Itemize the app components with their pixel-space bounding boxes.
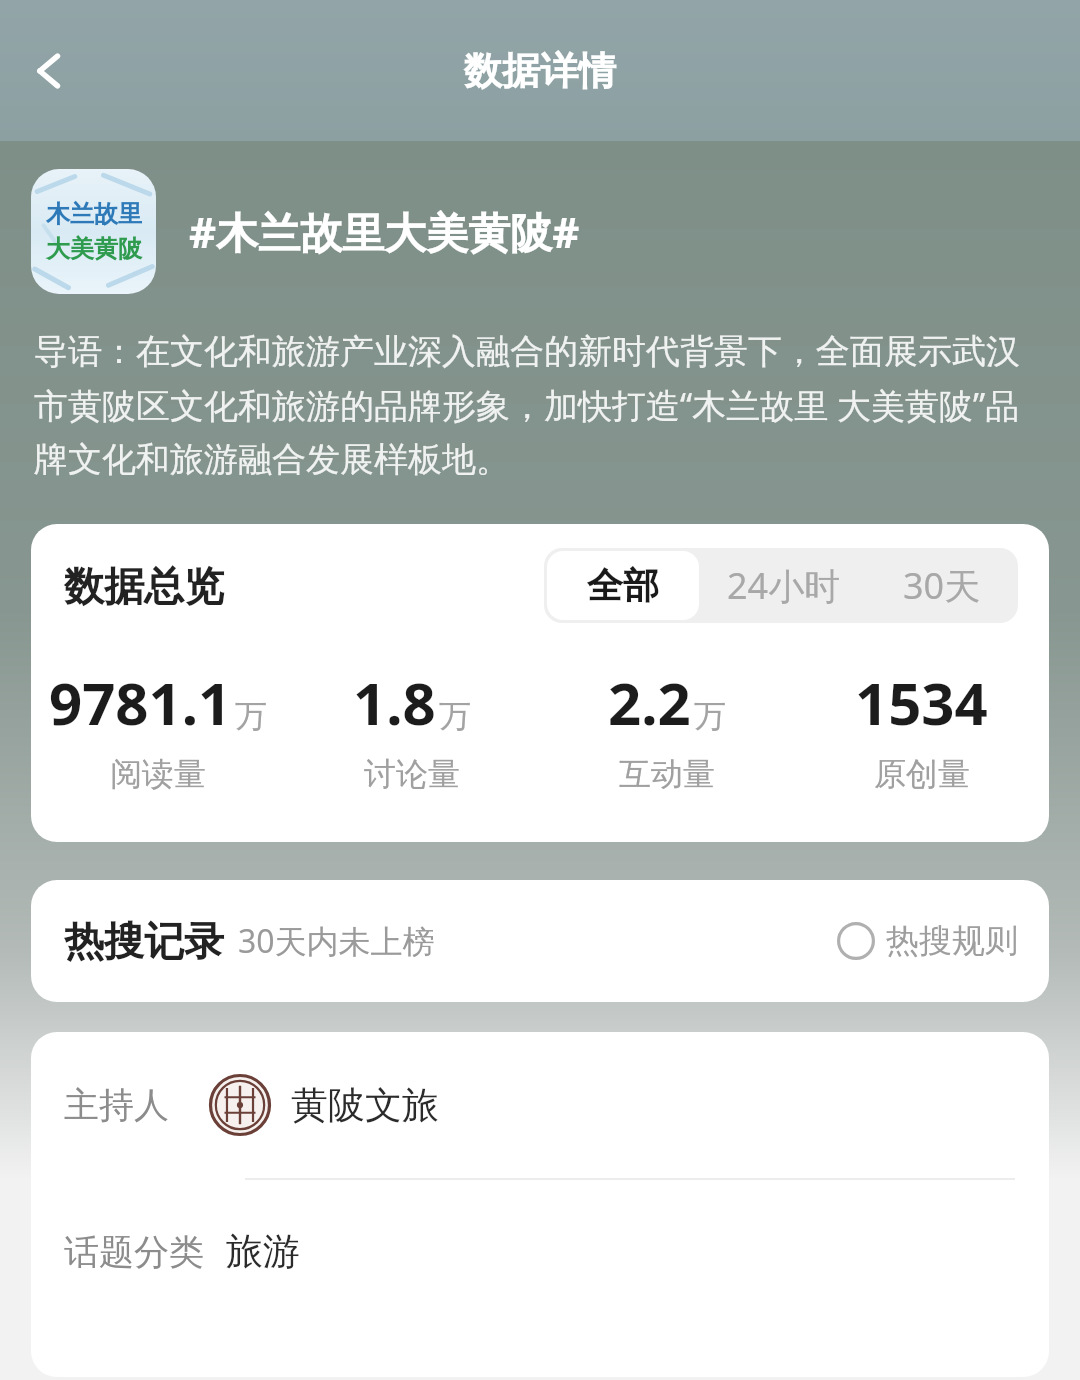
staticText: 30天	[903, 561, 981, 610]
button[interactable]: 全部	[547, 551, 699, 620]
button[interactable]: 木兰故里	[31, 169, 1049, 294]
staticText: 主持人	[64, 1083, 169, 1127]
staticText: 导语：在文化和旅游产业深入融合的新时代背景下，全面展示武汉市黄陂区文化和旅游的品…	[34, 330, 1046, 481]
staticText: 数据详情	[464, 47, 616, 95]
staticText: 黄陂文旅	[291, 1082, 439, 1129]
staticText: 互动量	[619, 754, 715, 794]
staticText: 全部	[587, 563, 659, 608]
staticText: 话题分类	[64, 1230, 204, 1274]
button[interactable]: 30天	[866, 548, 1018, 623]
staticText: 万	[694, 696, 726, 736]
button[interactable]: 热搜规则	[837, 920, 1018, 962]
staticText: 大美黄陂	[46, 234, 142, 264]
button[interactable]: 9781.1	[31, 663, 285, 794]
staticText: 24小时	[727, 561, 841, 610]
staticText: 万	[235, 696, 267, 736]
staticText: #木兰故里大美黄陂#	[189, 203, 580, 260]
staticText: 热搜记录	[64, 916, 224, 966]
staticText: 1.8	[353, 663, 436, 742]
staticText: 旅游	[226, 1228, 300, 1275]
staticText: 木兰故里	[46, 199, 142, 229]
button[interactable]: 1534	[794, 663, 1049, 794]
button[interactable]: 2.2	[539, 663, 794, 794]
staticText: 原创量	[874, 754, 970, 794]
staticText: 9781.1	[49, 663, 232, 742]
staticText: 阅读量	[110, 754, 206, 794]
staticText: 热搜规则	[886, 920, 1018, 962]
staticText: 数据总览	[64, 561, 224, 611]
button[interactable]: 24小时	[702, 548, 866, 623]
staticText: 30天内未上榜	[238, 919, 435, 963]
button[interactable]: 主持人	[31, 1032, 1049, 1178]
button[interactable]: 话题分类	[31, 1180, 1049, 1323]
button[interactable]: 1.8	[285, 663, 539, 794]
staticText: 2.2	[608, 663, 691, 742]
button[interactable]: Back	[14, 35, 86, 107]
staticText: 万	[439, 696, 471, 736]
staticText: 1534	[855, 663, 988, 742]
staticText: 讨论量	[364, 754, 460, 794]
button[interactable]: 热搜记录	[31, 880, 1049, 1002]
